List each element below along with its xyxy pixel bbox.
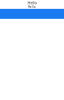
staticText: Hello: [27, 0, 36, 5]
staticText: Hello: [28, 5, 36, 9]
